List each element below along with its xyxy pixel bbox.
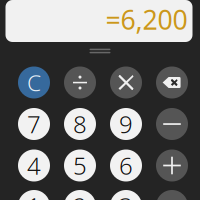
staticText: 4 [27, 150, 41, 181]
staticText: 1 [27, 190, 41, 200]
button[interactable]: Multiply [110, 66, 142, 98]
button[interactable]: Parentheses [156, 190, 188, 200]
button[interactable]: 9 [110, 108, 142, 140]
button[interactable]: Divide [64, 66, 96, 98]
button[interactable]: Plus [156, 149, 188, 181]
staticText: 5 [73, 150, 87, 181]
staticText: 7 [27, 108, 41, 140]
button[interactable]: 6 [110, 149, 142, 181]
button[interactable]: 1 [18, 190, 50, 200]
staticText: =6,200 [105, 2, 187, 37]
button[interactable]: 4 [18, 149, 50, 181]
staticText: 2 [73, 190, 87, 200]
button[interactable]: 5 [64, 149, 96, 181]
staticText: 8 [73, 108, 87, 140]
staticText: 3 [119, 190, 133, 200]
button[interactable]: 2 [64, 190, 96, 200]
button[interactable]: 8 [64, 108, 96, 140]
staticText: 9 [119, 108, 133, 140]
button[interactable]: Backspace [156, 66, 188, 98]
button[interactable]: 7 [18, 108, 50, 140]
button[interactable]: Minus [156, 108, 188, 140]
button[interactable]: Clear [18, 66, 50, 98]
staticText: C [27, 67, 41, 97]
button[interactable]: 3 [110, 190, 142, 200]
staticText: 6 [119, 150, 133, 181]
